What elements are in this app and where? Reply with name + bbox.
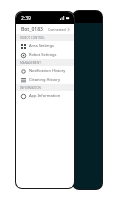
button[interactable]: App Information (16, 91, 74, 100)
button[interactable]: Notification History (16, 66, 74, 75)
staticText: Connected (48, 27, 66, 32)
button[interactable]: Connected (48, 27, 70, 32)
button[interactable]: Cleaning History (16, 75, 74, 84)
staticText: Area Settings (29, 43, 54, 48)
staticText: INFORMATION (20, 86, 41, 90)
staticText: Notification History (29, 68, 66, 73)
staticText: MANAGEMENT (20, 61, 41, 65)
staticText: 2:39 (21, 15, 31, 22)
staticText: App Information (29, 93, 61, 98)
staticText: Bot_0183 (21, 26, 43, 33)
staticText: ROBOT CONTROL (20, 36, 45, 40)
staticText: Cleaning History (29, 77, 61, 82)
button[interactable]: Area Settings (16, 41, 74, 50)
button[interactable]: Robot Settings (16, 50, 74, 59)
staticText: Robot Settings (29, 52, 57, 57)
